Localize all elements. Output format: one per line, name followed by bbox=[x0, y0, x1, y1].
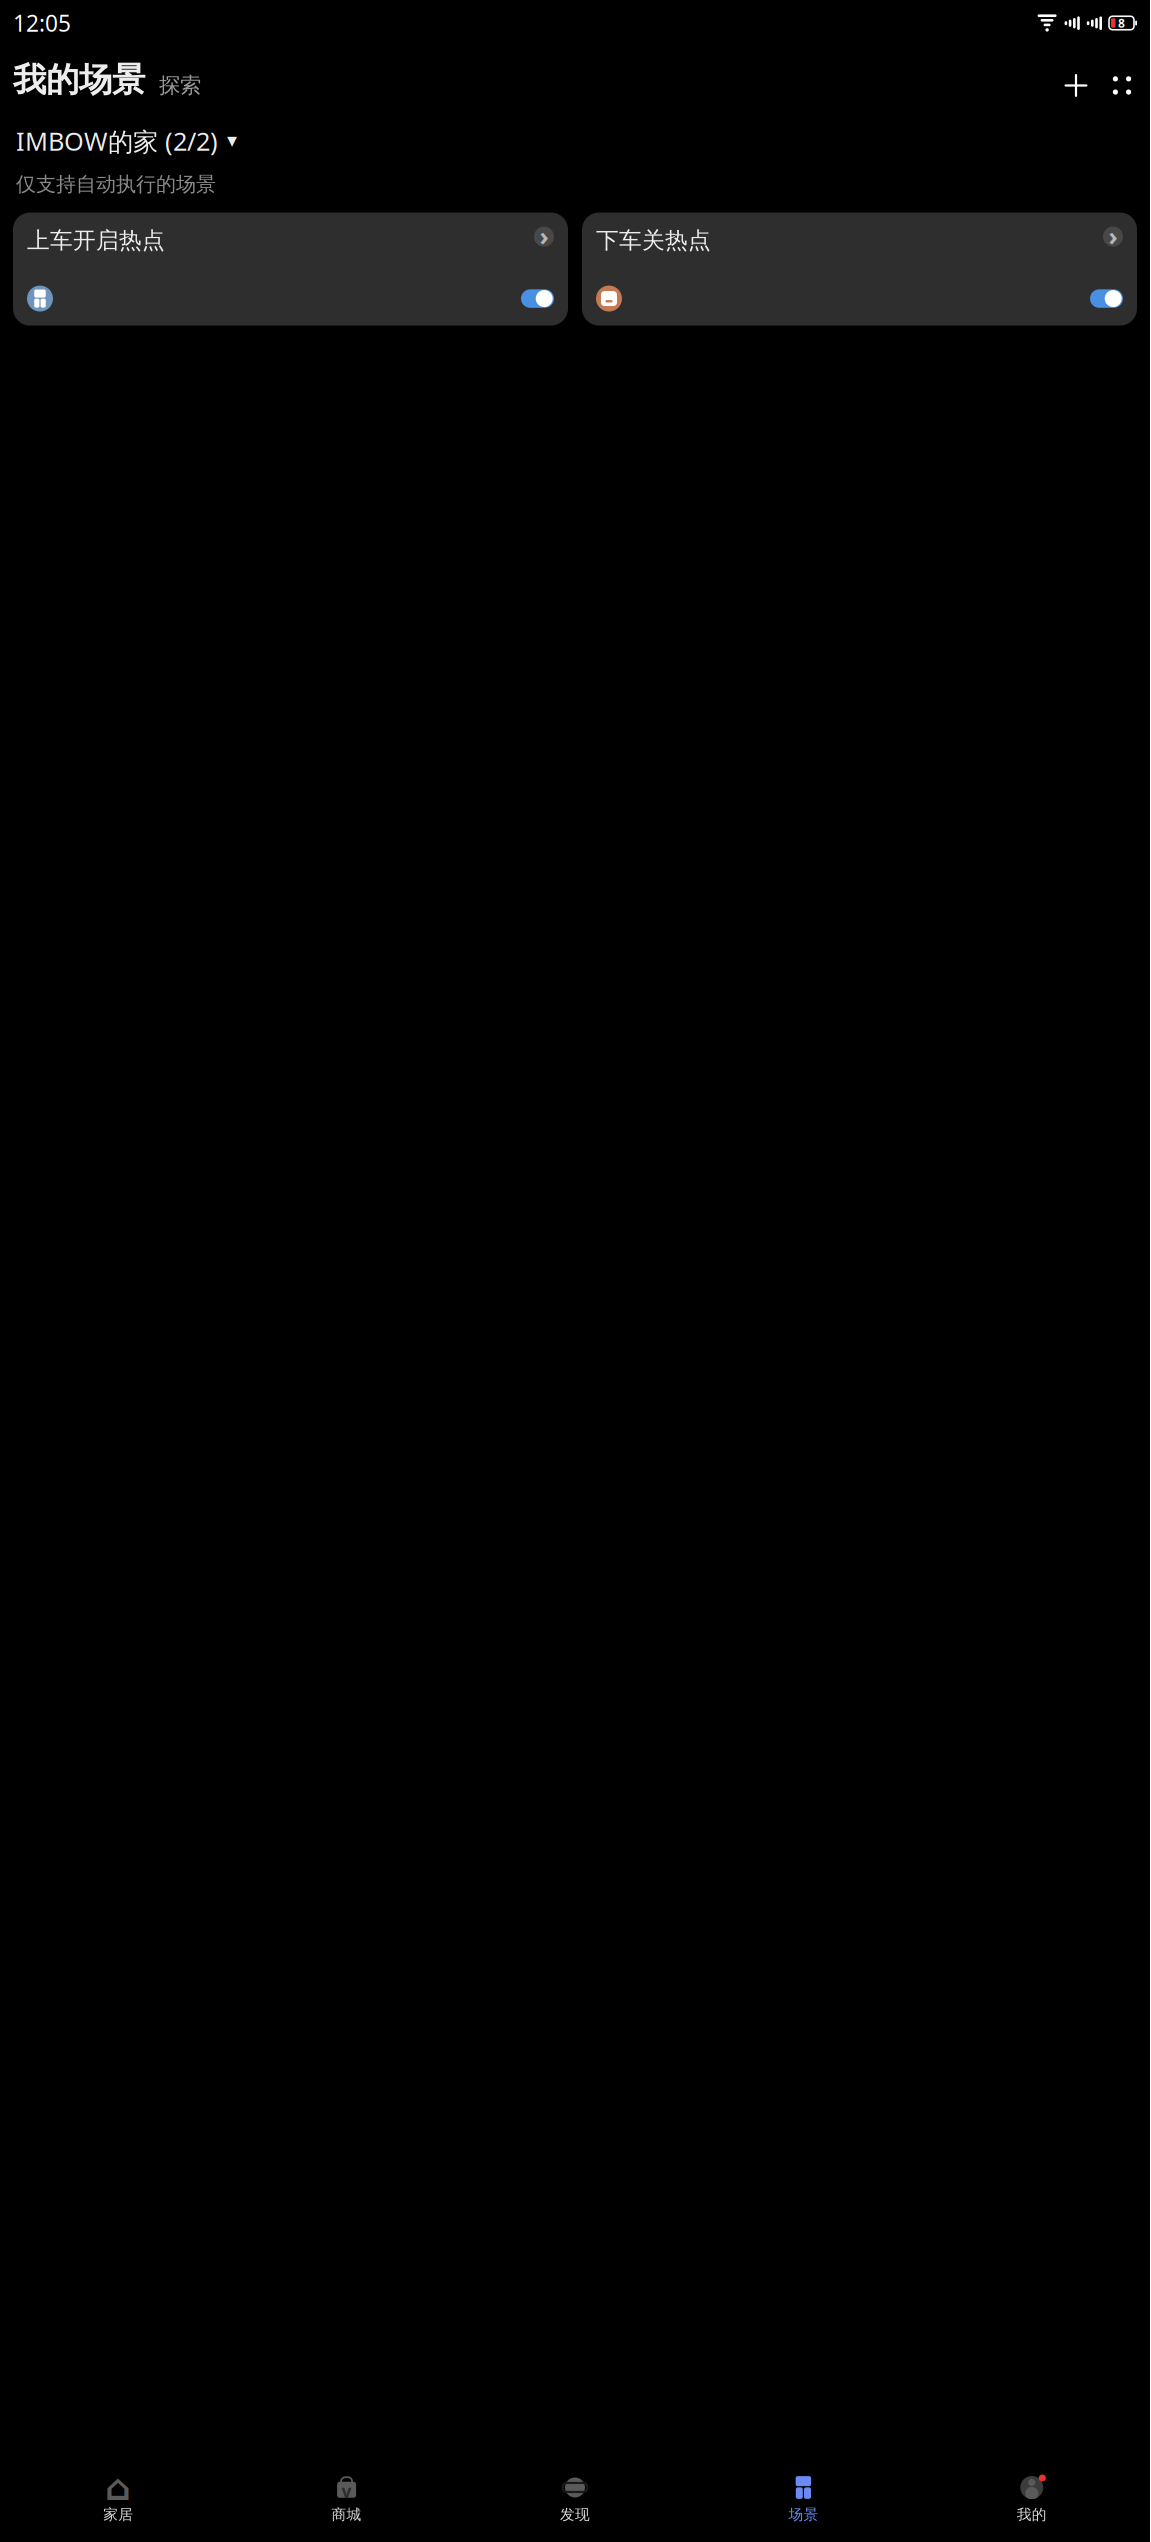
button[interactable]: v bbox=[232, 2470, 461, 2527]
button[interactable]: 场景 bbox=[689, 2470, 918, 2527]
staticText: ⌂ bbox=[105, 2467, 131, 2508]
staticText: 仅支持自动执行的场景 bbox=[16, 172, 216, 197]
button[interactable]: 发现 bbox=[461, 2470, 689, 2527]
staticText: › bbox=[1108, 219, 1117, 252]
button[interactable]: 上车开启热点 开关 bbox=[521, 289, 554, 308]
button[interactable]: 我的 bbox=[918, 2470, 1146, 2527]
staticText: IMBOW的家 (2/2) bbox=[16, 124, 218, 158]
button[interactable]: 我的场景 bbox=[13, 59, 145, 100]
staticText: 8 bbox=[1118, 15, 1125, 31]
button[interactable]: ⌂ bbox=[4, 2470, 232, 2527]
button[interactable]: 探索 bbox=[145, 72, 201, 100]
staticText: 我的场景 bbox=[13, 59, 145, 100]
button[interactable]: 查看场景详情 bbox=[534, 227, 554, 247]
staticText: 发现 bbox=[560, 2505, 590, 2523]
staticText: 商城 bbox=[332, 2505, 362, 2523]
staticText: 场景 bbox=[788, 2505, 818, 2523]
button[interactable]: IMBOW的家 (2/2) bbox=[0, 120, 1150, 162]
button[interactable]: 上车开启热点 bbox=[13, 213, 568, 326]
staticText: 家居 bbox=[103, 2505, 133, 2523]
button[interactable]: 下车关热点 开关 bbox=[1090, 289, 1123, 308]
staticText: 探索 bbox=[159, 72, 201, 98]
button[interactable]: 更多选项 bbox=[1107, 70, 1137, 100]
staticText: › bbox=[539, 219, 548, 252]
staticText: 12:05 bbox=[13, 8, 71, 38]
button[interactable]: 下车关热点 bbox=[582, 213, 1137, 326]
button[interactable]: 查看场景详情 bbox=[1103, 227, 1123, 247]
staticText: 上车开启热点 bbox=[27, 227, 165, 254]
button[interactable]: 添加场景 bbox=[1061, 70, 1091, 100]
staticText: ▾ bbox=[227, 129, 237, 151]
staticText: 下车关热点 bbox=[596, 227, 711, 254]
staticText: 我的 bbox=[1017, 2505, 1047, 2523]
staticText: v bbox=[342, 2479, 352, 2502]
